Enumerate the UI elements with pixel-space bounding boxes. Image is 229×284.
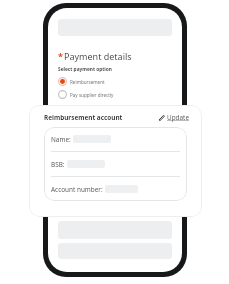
staticText: Update [167,113,190,122]
button[interactable]: BSB: [44,152,187,176]
staticText: Reimbursement [70,79,105,85]
staticText: Account number: [51,185,103,194]
staticText: Select payment option [58,66,112,73]
staticText: Pay supplier directly [70,92,114,98]
staticText: Reimbursement account [44,113,123,122]
button[interactable]: Reimbursement [58,77,105,86]
staticText: Payment details [64,50,132,62]
button[interactable]: Pay supplier directly [58,90,114,99]
other: Update [158,114,165,121]
staticText: * [58,50,63,62]
staticText: Name: [51,135,71,144]
button[interactable]: Update [158,113,190,122]
staticText: BSB: [51,160,65,169]
button[interactable]: Account number: [44,177,187,201]
button[interactable]: Name: [44,127,187,151]
